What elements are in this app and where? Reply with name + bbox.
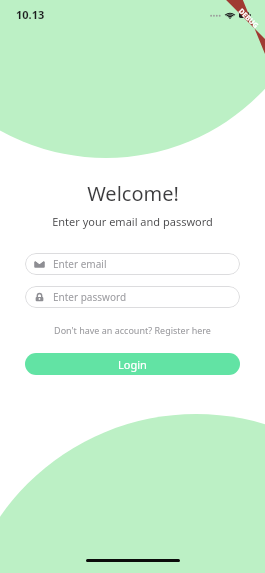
staticText: Enter email	[53, 257, 107, 271]
other: Password	[34, 292, 45, 303]
staticText: Welcome!	[87, 180, 179, 207]
staticText: Login	[118, 357, 147, 372]
button[interactable]: Don't have an account? Register here	[50, 322, 215, 338]
button[interactable]: Login	[25, 353, 240, 375]
staticText: DEBUG	[236, 7, 261, 31]
button[interactable]: Email	[25, 253, 240, 275]
staticText: Enter password	[53, 290, 127, 304]
button[interactable]: Password	[25, 286, 240, 308]
staticText: Don't have an account? Register here	[54, 324, 211, 336]
staticText: Enter your email and password	[52, 214, 213, 229]
staticText: 10.13	[16, 7, 45, 22]
other: Email	[34, 259, 45, 270]
